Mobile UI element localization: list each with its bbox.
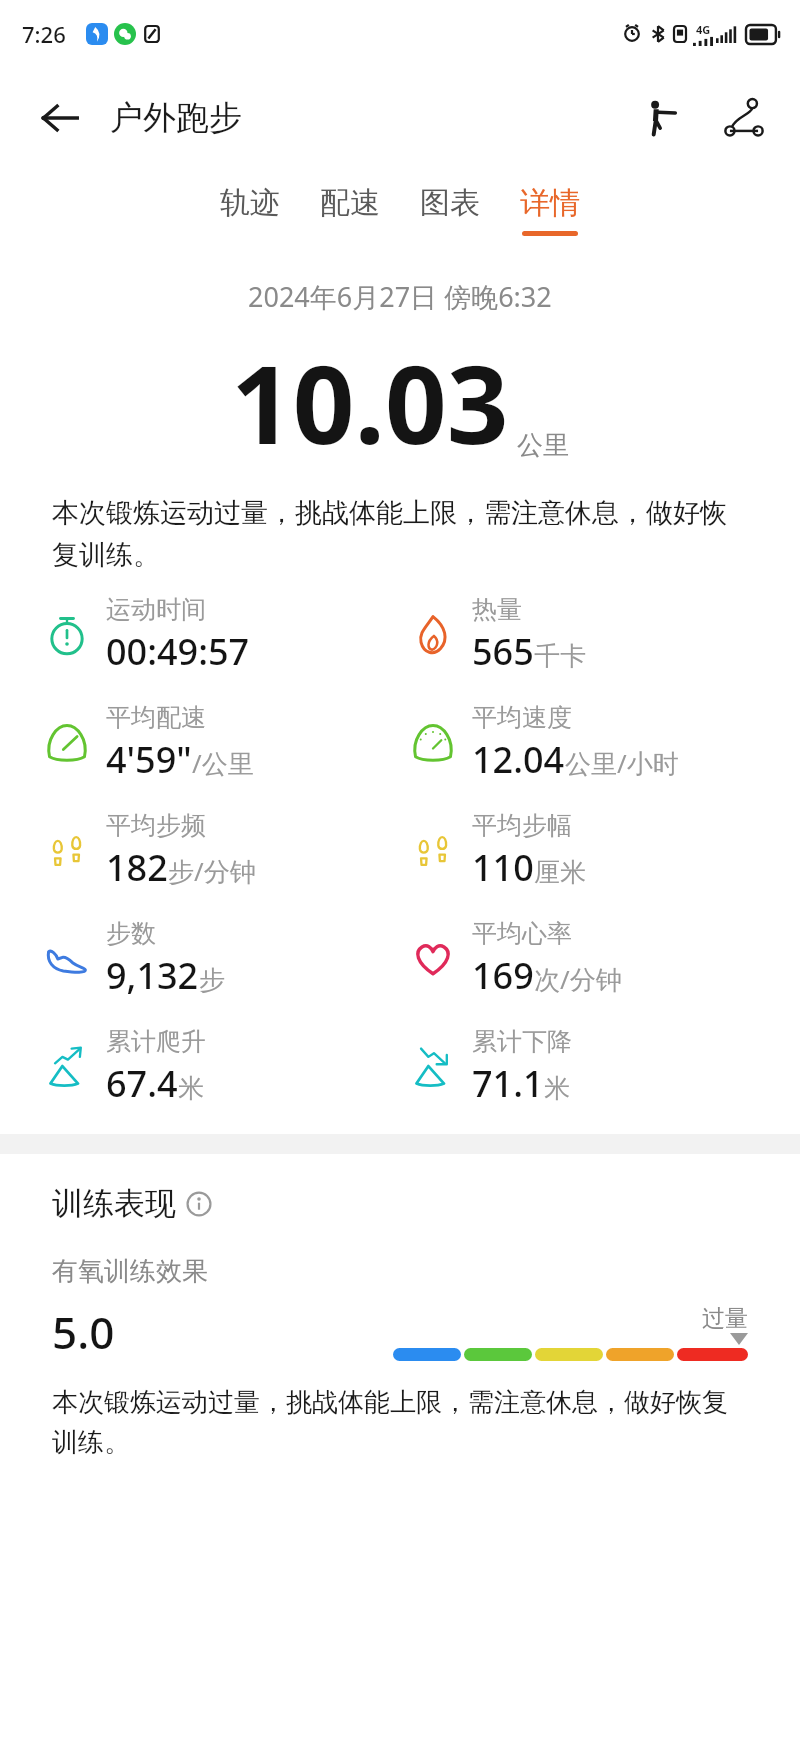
- staticText: 有氧训练效果: [52, 1255, 208, 1288]
- staticText: 累计下降: [472, 1026, 572, 1057]
- button[interactable]: 运动时间: [44, 594, 400, 676]
- staticText: 运动时间: [106, 594, 206, 625]
- button[interactable]: 平均配速: [44, 702, 400, 784]
- staticText: 平均步幅: [472, 810, 572, 841]
- button[interactable]: 热量: [410, 594, 800, 676]
- staticText: 次/分钟: [534, 961, 622, 997]
- staticText: 厘米: [534, 856, 586, 889]
- staticText: 182: [106, 843, 168, 892]
- button[interactable]: Back: [34, 92, 86, 144]
- staticText: 67.4: [106, 1059, 178, 1108]
- button[interactable]: 累计爬升: [44, 1026, 400, 1108]
- other: Info: [186, 1191, 212, 1217]
- button[interactable]: 平均心率: [410, 918, 800, 1000]
- button[interactable]: 平均步幅: [410, 810, 800, 892]
- staticText: 平均心率: [472, 918, 572, 949]
- staticText: 训练表现: [52, 1184, 176, 1223]
- staticText: 5.0: [52, 1302, 115, 1362]
- button[interactable]: 详情: [500, 176, 600, 244]
- staticText: 米: [544, 1072, 570, 1105]
- staticText: 公里: [517, 429, 569, 462]
- staticText: 图表: [420, 184, 480, 222]
- staticText: 169: [472, 951, 534, 1000]
- staticText: 平均步频: [106, 810, 206, 841]
- staticText: 7:26: [22, 19, 66, 49]
- staticText: 平均配速: [106, 702, 206, 733]
- button[interactable]: Route: [716, 90, 772, 146]
- staticText: 步: [199, 964, 225, 997]
- staticText: /公里: [192, 745, 254, 781]
- staticText: 4'59": [106, 735, 192, 784]
- staticText: 热量: [472, 594, 522, 625]
- staticText: 4G: [696, 22, 711, 37]
- staticText: 71.1: [472, 1059, 544, 1108]
- button[interactable]: 训练表现: [52, 1184, 212, 1223]
- staticText: 00:49:57: [106, 627, 250, 676]
- staticText: 步/分钟: [168, 853, 256, 889]
- staticText: 公里/小时: [565, 745, 679, 781]
- staticText: 平均速度: [472, 702, 572, 733]
- staticText: 本次锻炼运动过量，挑战体能上限，需注意休息，做好恢复训练。: [52, 1386, 748, 1459]
- staticText: 9,132: [106, 951, 199, 1000]
- staticText: 详情: [520, 184, 580, 222]
- button[interactable]: 累计下降: [410, 1026, 800, 1108]
- staticText: 累计爬升: [106, 1026, 206, 1057]
- button[interactable]: Share workout: [630, 90, 686, 146]
- button[interactable]: 图表: [400, 176, 500, 244]
- button[interactable]: 步数: [44, 918, 400, 1000]
- staticText: 千卡: [534, 640, 586, 673]
- staticText: 12.04: [472, 735, 565, 784]
- button[interactable]: 轨迹: [200, 176, 300, 244]
- staticText: 米: [178, 1072, 204, 1105]
- button[interactable]: 配速: [300, 176, 400, 244]
- button[interactable]: 平均步频: [44, 810, 400, 892]
- staticText: 2024年6月27日 傍晚6:32: [248, 278, 552, 315]
- staticText: 565: [472, 627, 534, 676]
- staticText: 轨迹: [220, 184, 280, 222]
- staticText: 步数: [106, 918, 156, 949]
- staticText: 户外跑步: [110, 97, 242, 139]
- staticText: 10.03: [231, 329, 509, 476]
- staticText: 配速: [320, 184, 380, 222]
- staticText: 过量: [702, 1304, 748, 1333]
- staticText: 110: [472, 843, 534, 892]
- staticText: 本次锻炼运动过量，挑战体能上限，需注意休息，做好恢复训练。: [52, 496, 748, 572]
- button[interactable]: 平均速度: [410, 702, 800, 784]
